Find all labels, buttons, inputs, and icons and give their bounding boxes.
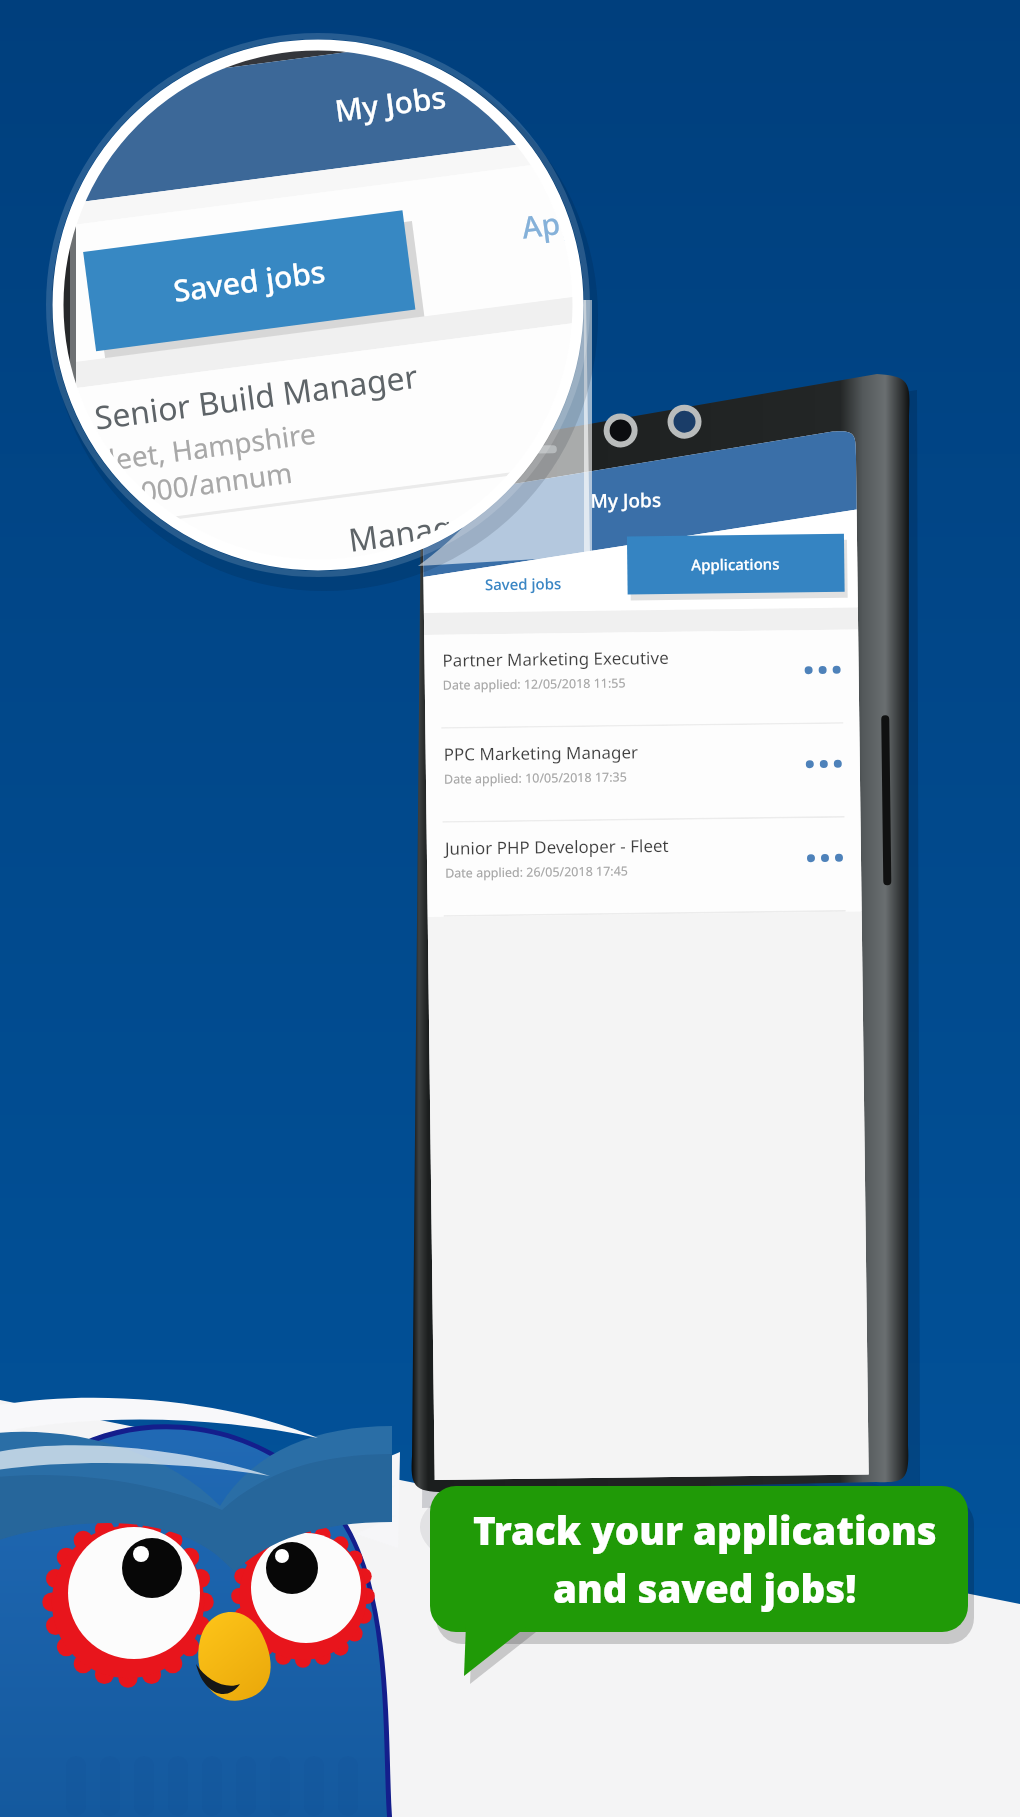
button[interactable]: PPC Marketing Manager [430, 706, 854, 800]
button[interactable]: Saved jobs tab [430, 536, 620, 610]
button[interactable]: Partner Marketing Executive [430, 612, 854, 706]
button[interactable]: More options for Junior PHP Developer - … [796, 818, 854, 876]
button[interactable]: Applications tab [626, 536, 846, 596]
button[interactable]: More options for Partner Marketing Execu… [796, 630, 854, 688]
button[interactable]: More options for PPC Marketing Manager [796, 724, 854, 782]
button[interactable]: Junior PHP Developer - Fleet [430, 800, 854, 894]
button[interactable]: Track your applications and saved jobs! [430, 1486, 968, 1632]
button[interactable]: Magnified preview of My Jobs screen [54, 41, 582, 569]
